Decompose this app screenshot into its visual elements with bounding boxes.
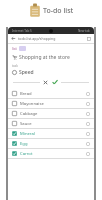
staticText: Egg	[20, 141, 86, 147]
other: More options	[86, 112, 90, 116]
staticText: todo.list.app/shopping	[18, 36, 87, 41]
button[interactable]: Back	[8, 34, 94, 43]
button[interactable]: Select	[8, 69, 94, 76]
staticText: To-do list	[43, 6, 74, 16]
button[interactable]: Cancel	[43, 80, 48, 85]
staticText: list	[12, 46, 17, 51]
other: More options	[86, 152, 90, 156]
button[interactable]: Cart	[8, 54, 94, 61]
other: Cart	[12, 55, 17, 60]
button[interactable]: Carrot	[8, 149, 94, 158]
staticText: Mayonnaise	[20, 101, 86, 107]
other: More options	[86, 142, 90, 146]
button[interactable]: To-do list logo	[0, 3, 102, 18]
staticText: Bread	[20, 91, 86, 97]
other: More options	[86, 122, 90, 126]
other: To-do list logo	[29, 3, 41, 18]
other: More options	[86, 132, 90, 136]
staticText: Sauce	[20, 121, 86, 127]
staticText: Cabbage	[20, 111, 86, 117]
staticText: Carrot	[20, 151, 86, 157]
staticText: Mineral	[20, 131, 86, 137]
other: Back	[11, 36, 16, 41]
staticText: Speed	[19, 69, 34, 76]
staticText: Shopping at the store	[19, 54, 70, 61]
staticText: Internet Tab 5	[12, 29, 32, 33]
other: Select	[12, 70, 17, 75]
button[interactable]: Cabbage	[8, 109, 94, 118]
staticText: New tab	[78, 29, 90, 33]
button[interactable]: Sauce	[8, 119, 94, 128]
button[interactable]: Mayonnaise	[8, 99, 94, 108]
staticText: task	[12, 64, 18, 68]
button[interactable]: Confirm	[52, 79, 58, 85]
button[interactable]: Mineral	[8, 129, 94, 138]
other: Menu	[87, 37, 91, 41]
other: More options	[86, 102, 90, 106]
button[interactable]: Egg	[8, 139, 94, 148]
other: More options	[86, 92, 90, 96]
button[interactable]	[19, 46, 26, 51]
button[interactable]: Bread	[8, 89, 94, 98]
